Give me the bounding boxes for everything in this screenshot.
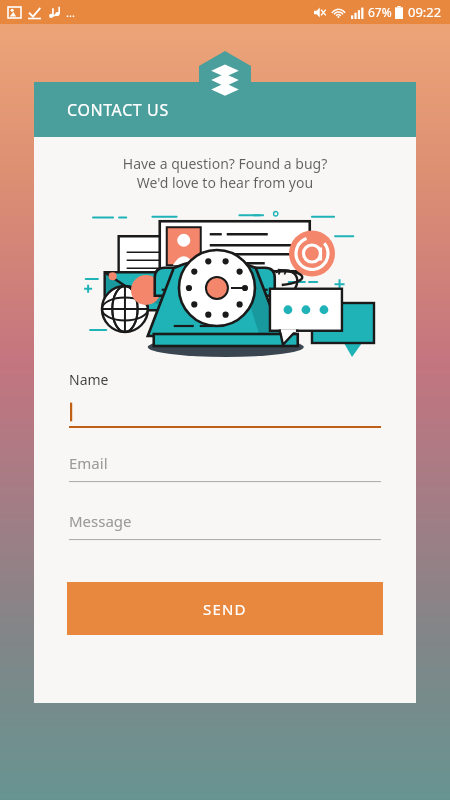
button[interactable]: Message bbox=[69, 511, 381, 540]
staticText: Name bbox=[69, 370, 109, 389]
staticText: SEND bbox=[203, 599, 247, 619]
button[interactable]: Name bbox=[69, 370, 381, 428]
button[interactable]: Email bbox=[69, 453, 381, 482]
staticText: Message bbox=[69, 511, 132, 531]
button[interactable]: SEND bbox=[67, 582, 383, 635]
staticText: CONTACT US bbox=[67, 99, 169, 121]
staticText: ... bbox=[66, 5, 75, 20]
staticText: 67% bbox=[368, 4, 392, 20]
other: App logo bbox=[195, 51, 255, 111]
staticText: 09:22 bbox=[408, 3, 442, 21]
staticText: Have a question? Found a bug? We'd love … bbox=[34, 154, 416, 192]
staticText: Email bbox=[69, 453, 108, 473]
